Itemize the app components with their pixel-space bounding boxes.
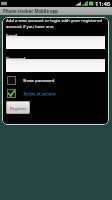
staticText: Phone tracker Mobile app xyxy=(3,8,59,14)
staticText: Register xyxy=(10,105,27,111)
staticText: 11:46 xyxy=(95,0,111,7)
staticText: Show password xyxy=(23,77,55,83)
button[interactable]: Register xyxy=(6,101,30,114)
button[interactable] xyxy=(6,59,105,72)
staticText: Terms of service xyxy=(23,90,56,96)
staticText: Email xyxy=(6,32,18,38)
staticText: Add a new account or login with your reg… xyxy=(6,17,106,29)
button[interactable]: Terms of service xyxy=(7,88,56,98)
button[interactable] xyxy=(6,36,105,49)
button[interactable]: Show password xyxy=(7,75,55,85)
button[interactable]: Phone tracker Mobile app xyxy=(0,7,112,15)
other: Notification xyxy=(1,1,7,6)
staticText: Password xyxy=(6,55,26,61)
